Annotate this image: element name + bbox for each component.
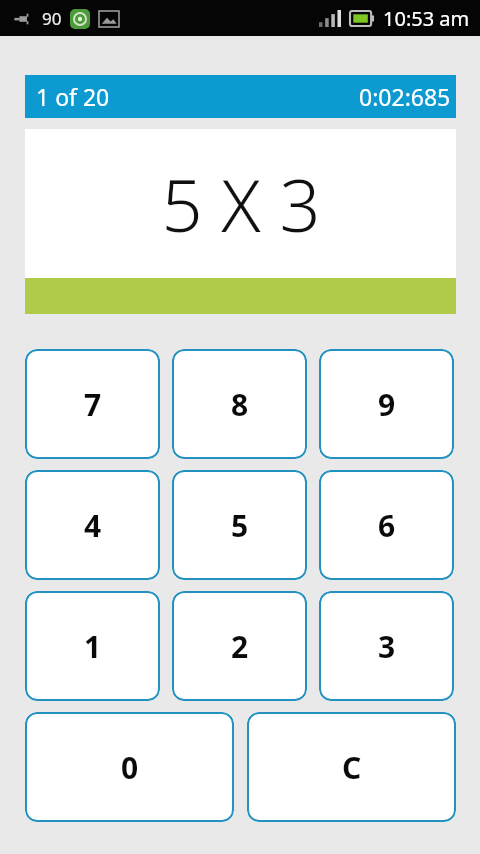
staticText: 0:02:685 [359, 81, 451, 112]
button[interactable]: 9 [319, 349, 454, 459]
staticText: 1 [84, 626, 102, 667]
staticText: 0 [121, 747, 139, 788]
staticText: 90 [42, 7, 62, 30]
staticText: 3 [378, 626, 396, 667]
button[interactable]: C [247, 712, 456, 822]
staticText: 9 [378, 384, 396, 425]
staticText: 6 [378, 505, 396, 546]
button[interactable]: 1 of 20 [25, 75, 456, 118]
button[interactable]: 6 [319, 470, 454, 580]
staticText: 4 [84, 505, 102, 546]
staticText: 1 of 20 [36, 81, 110, 112]
staticText: C [342, 747, 362, 788]
staticText: 7 [84, 384, 102, 425]
staticText: 2 [231, 626, 249, 667]
staticText: 10:53 am [383, 5, 470, 32]
staticText: 5 [231, 505, 249, 546]
staticText: 5 X 3 [161, 155, 321, 253]
button[interactable]: 5 [172, 470, 307, 580]
button[interactable]: 7 [25, 349, 160, 459]
staticText: 8 [231, 384, 249, 425]
button[interactable]: 8 [172, 349, 307, 459]
button[interactable]: 1 [25, 591, 160, 701]
button[interactable]: 3 [319, 591, 454, 701]
button[interactable]: 0 [25, 712, 234, 822]
button[interactable]: 4 [25, 470, 160, 580]
button[interactable]: 2 [172, 591, 307, 701]
